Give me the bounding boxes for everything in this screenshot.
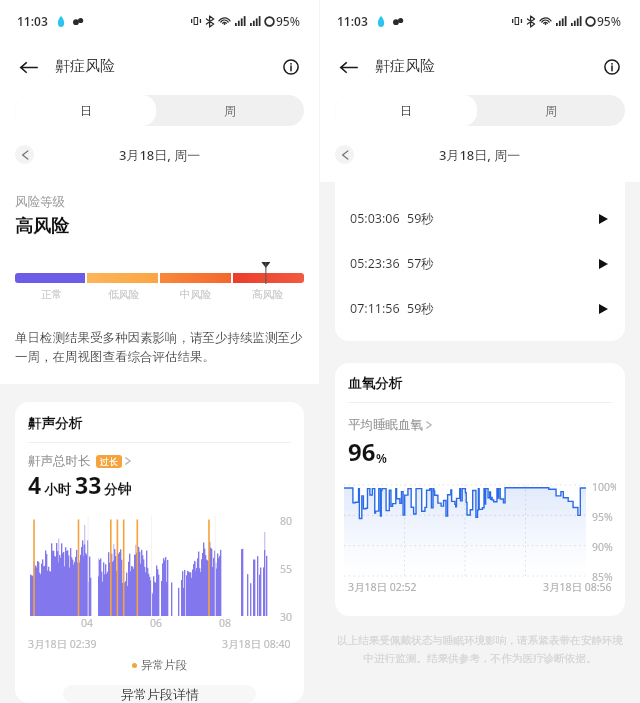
staticText: 正常 (41, 288, 62, 301)
button[interactable]: Back (10, 49, 46, 85)
staticText: 分钟 (104, 481, 131, 498)
staticText: 周 (224, 103, 236, 118)
staticText: 3月18日, 周一 (439, 146, 521, 164)
button[interactable]: Back (330, 49, 366, 85)
button[interactable]: Info (595, 50, 629, 84)
staticText: 95% (276, 13, 300, 29)
staticText: 3月18日 02:39 (28, 637, 97, 651)
button[interactable]: 05:03:06 (335, 196, 625, 241)
staticText: 57秒 (407, 255, 434, 272)
staticText: 异常片段详情 (121, 686, 199, 702)
button[interactable]: Info (274, 50, 308, 84)
button[interactable]: 平均睡眠血氧 (348, 417, 433, 433)
staticText: 3月18日, 周一 (119, 146, 201, 164)
staticText: 11:03 (17, 13, 48, 29)
staticText: 周 (545, 103, 557, 118)
staticText: 96 (348, 435, 376, 468)
button[interactable]: 05:23:36 (335, 241, 625, 286)
staticText: 11:03 (337, 13, 368, 29)
staticText: 异常片段 (141, 658, 187, 672)
staticText: 08 (219, 616, 232, 630)
staticText: 高风险 (252, 288, 284, 301)
staticText: 平均睡眠血氧 (348, 417, 423, 433)
button[interactable]: 异常片段详情 (63, 685, 256, 703)
staticText: 日 (80, 103, 92, 118)
button[interactable]: 07:11:56 (335, 286, 625, 331)
staticText: 06 (150, 616, 163, 630)
staticText: 鼾症风险 (375, 57, 435, 76)
button[interactable]: Previous day (335, 145, 354, 164)
staticText: 3月18日 08:40 (222, 637, 291, 651)
staticText: 以上结果受佩戴状态与睡眠环境影响，请系紧表带在安静环境中进行监测。结果供参考，不… (334, 634, 626, 666)
button[interactable]: 周 (477, 95, 625, 126)
staticText: 小时 (44, 481, 71, 498)
staticText: 59秒 (407, 210, 434, 227)
staticText: 07:11:56 (350, 300, 400, 317)
staticText: 3月18日 08:56 (543, 580, 612, 594)
staticText: 59秒 (407, 300, 434, 317)
button[interactable]: 周 (156, 95, 304, 126)
staticText: 05:03:06 (350, 210, 400, 227)
staticText: 33 (75, 469, 102, 500)
staticText: 中风险 (180, 288, 212, 301)
staticText: 鼾声总时长 (28, 453, 91, 469)
staticText: 单日检测结果受多种因素影响，请至少持续监测至少一周，在周视图查看综合评估结果。 (15, 330, 306, 365)
staticText: 95% (597, 13, 621, 29)
staticText: 55 (280, 562, 293, 576)
staticText: % (376, 450, 387, 466)
staticText: 鼾声分析 (28, 415, 82, 432)
staticText: 30 (280, 610, 293, 624)
staticText: 95% (592, 510, 613, 524)
staticText: 血氧分析 (348, 375, 402, 392)
button[interactable]: Previous day (15, 145, 34, 164)
staticText: 04 (81, 616, 94, 630)
staticText: 3月18日 02:52 (348, 580, 417, 594)
button[interactable]: 鼾声总时长 (28, 453, 132, 469)
staticText: 风险等级 (15, 194, 65, 210)
staticText: 90% (592, 540, 613, 554)
button[interactable]: 日 (335, 95, 477, 126)
staticText: 低风险 (108, 288, 140, 301)
staticText: 鼾症风险 (55, 57, 115, 76)
button[interactable]: 日 (15, 95, 156, 126)
staticText: 100% (592, 480, 616, 494)
staticText: 80 (280, 514, 293, 528)
staticText: 05:23:36 (350, 255, 400, 272)
staticText: 4 (28, 469, 42, 500)
staticText: 日 (400, 103, 412, 118)
staticText: 高风险 (15, 215, 69, 238)
staticText: 过长 (100, 456, 118, 467)
staticText: 85% (592, 570, 613, 584)
